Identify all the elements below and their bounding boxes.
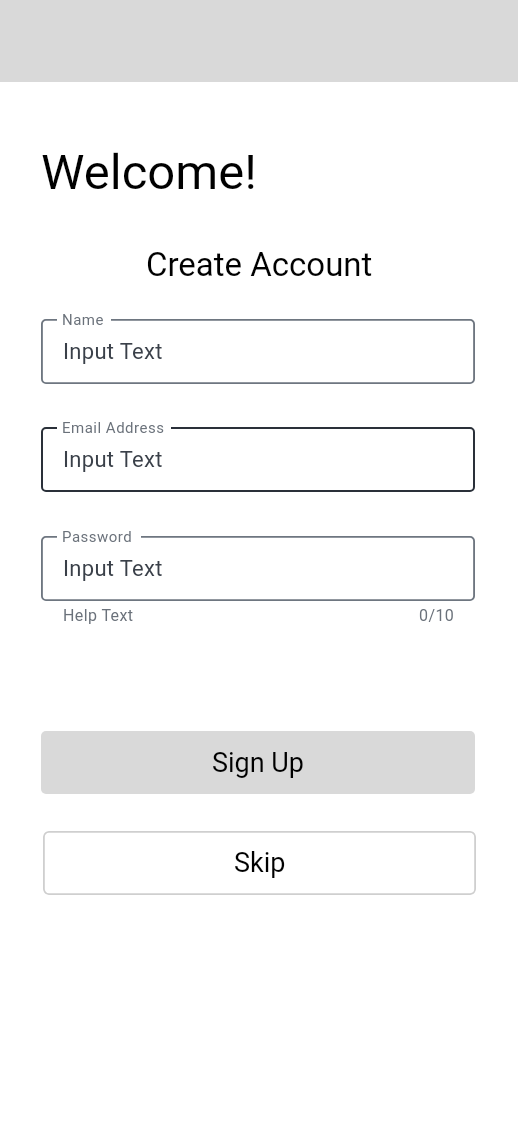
staticText: Name — [62, 311, 104, 329]
staticText: Sign Up — [212, 747, 305, 779]
button[interactable]: Email Address — [41, 427, 475, 492]
button[interactable]: Password — [41, 536, 475, 601]
staticText: Input Text — [63, 339, 163, 365]
button[interactable]: Name — [41, 319, 475, 384]
button[interactable]: Skip — [43, 831, 476, 895]
staticText: Skip — [234, 847, 286, 879]
staticText: Email Address — [62, 419, 165, 437]
button[interactable]: Sign Up — [41, 731, 475, 794]
staticText: Welcome! — [41, 144, 257, 201]
staticText: 0/10 — [419, 606, 455, 625]
staticText: Input Text — [63, 447, 163, 473]
staticText: Help Text — [63, 606, 134, 625]
staticText: Create Account — [146, 245, 373, 284]
staticText: Password — [62, 528, 133, 546]
staticText: Input Text — [63, 556, 163, 582]
